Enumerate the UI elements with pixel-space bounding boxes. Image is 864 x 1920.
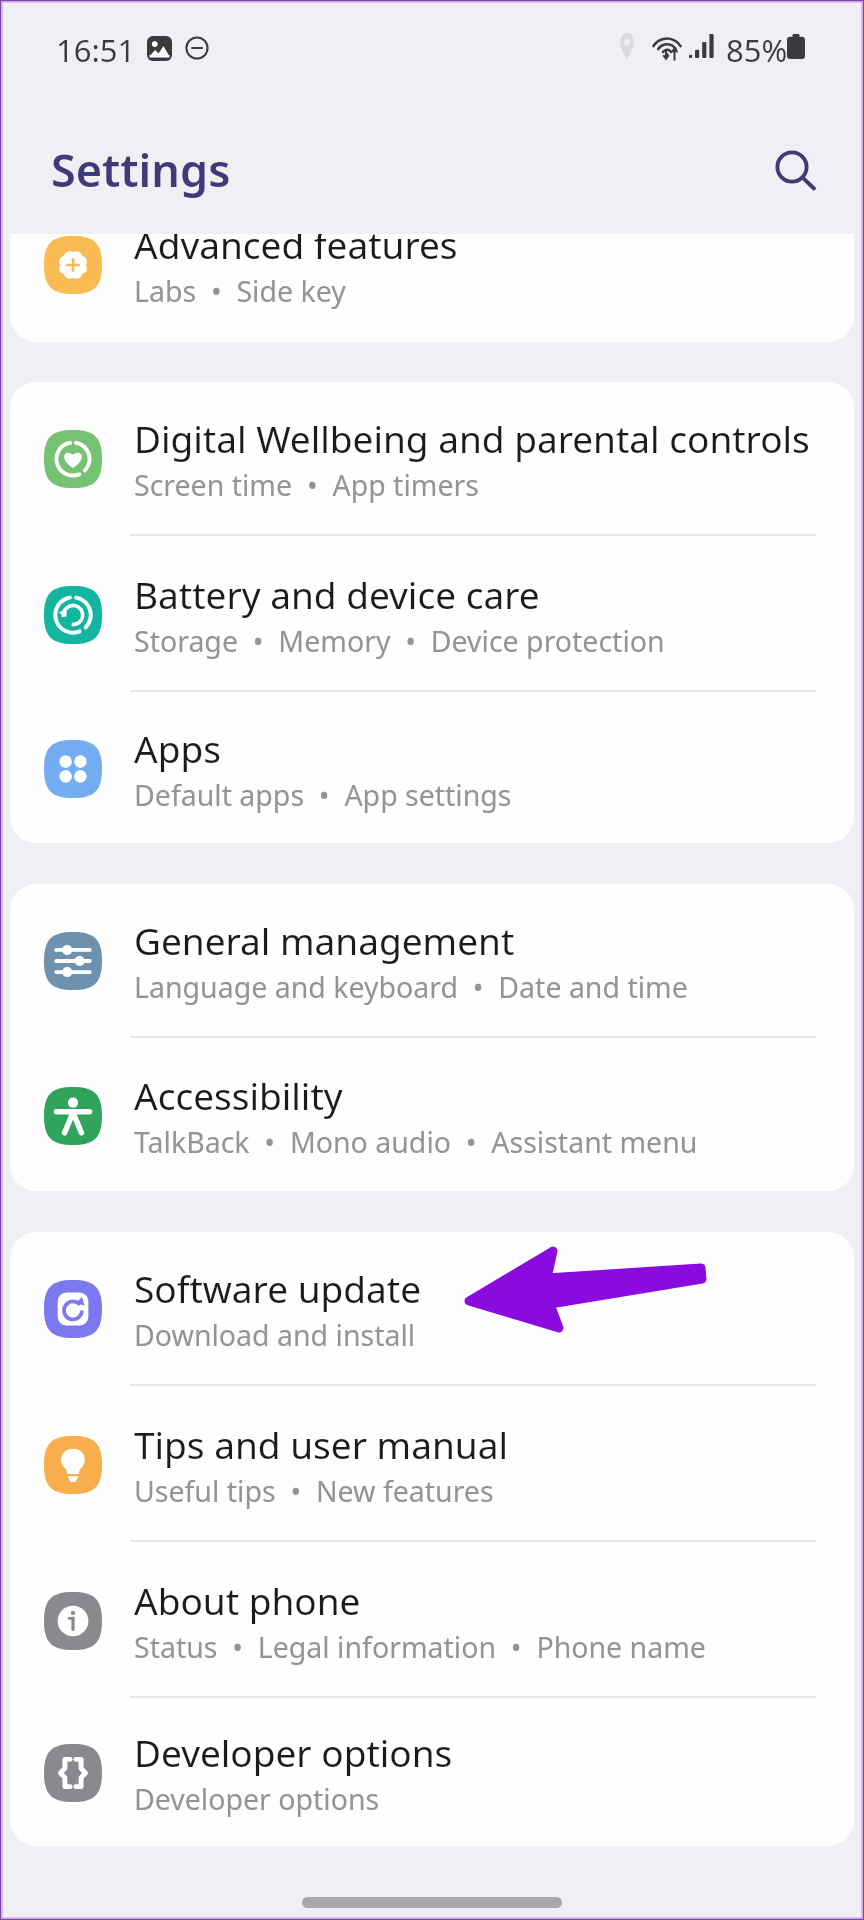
button[interactable]: Battery and device care	[10, 538, 854, 692]
button[interactable]: General management	[10, 884, 854, 1038]
button[interactable]: Tips and user manual	[10, 1388, 854, 1542]
button[interactable]: Accessibility	[10, 1040, 854, 1191]
button[interactable]: Apps	[10, 694, 854, 843]
staticText: Language and keyboard • Date and time	[134, 968, 688, 1007]
button[interactable]: Search	[752, 127, 840, 215]
staticText: About phone	[134, 1575, 361, 1625]
button[interactable]: Digital Wellbeing and parental controls	[10, 382, 854, 536]
staticText: Storage • Memory • Device protection	[134, 622, 665, 661]
staticText: Labs • Side key	[134, 272, 346, 311]
staticText: Settings	[51, 139, 231, 200]
staticText: Advanced features	[134, 234, 458, 269]
staticText: Screen time • App timers	[134, 466, 479, 505]
staticText: Developer options	[134, 1780, 380, 1819]
staticText: 85%	[726, 29, 788, 71]
staticText: Tips and user manual	[134, 1419, 508, 1469]
button[interactable]: Software update	[10, 1232, 854, 1386]
staticText: 16:51	[56, 29, 136, 71]
staticText: Accessibility	[134, 1070, 343, 1120]
staticText: Digital Wellbeing and parental controls	[134, 413, 810, 463]
staticText: Battery and device care	[134, 569, 540, 619]
staticText: TalkBack • Mono audio • Assistant menu	[134, 1123, 698, 1162]
button[interactable]: Advanced features	[10, 234, 854, 342]
staticText: Software update	[134, 1263, 422, 1313]
staticText: Developer options	[134, 1727, 453, 1777]
staticText: Download and install	[134, 1316, 416, 1355]
button[interactable]: Developer options	[10, 1700, 854, 1846]
staticText: Default apps • App settings	[134, 776, 512, 815]
staticText: Status • Legal information • Phone name	[134, 1628, 706, 1667]
staticText: General management	[134, 915, 515, 965]
button[interactable]: About phone	[10, 1544, 854, 1698]
staticText: Apps	[134, 723, 221, 773]
staticText: Useful tips • New features	[134, 1472, 494, 1511]
